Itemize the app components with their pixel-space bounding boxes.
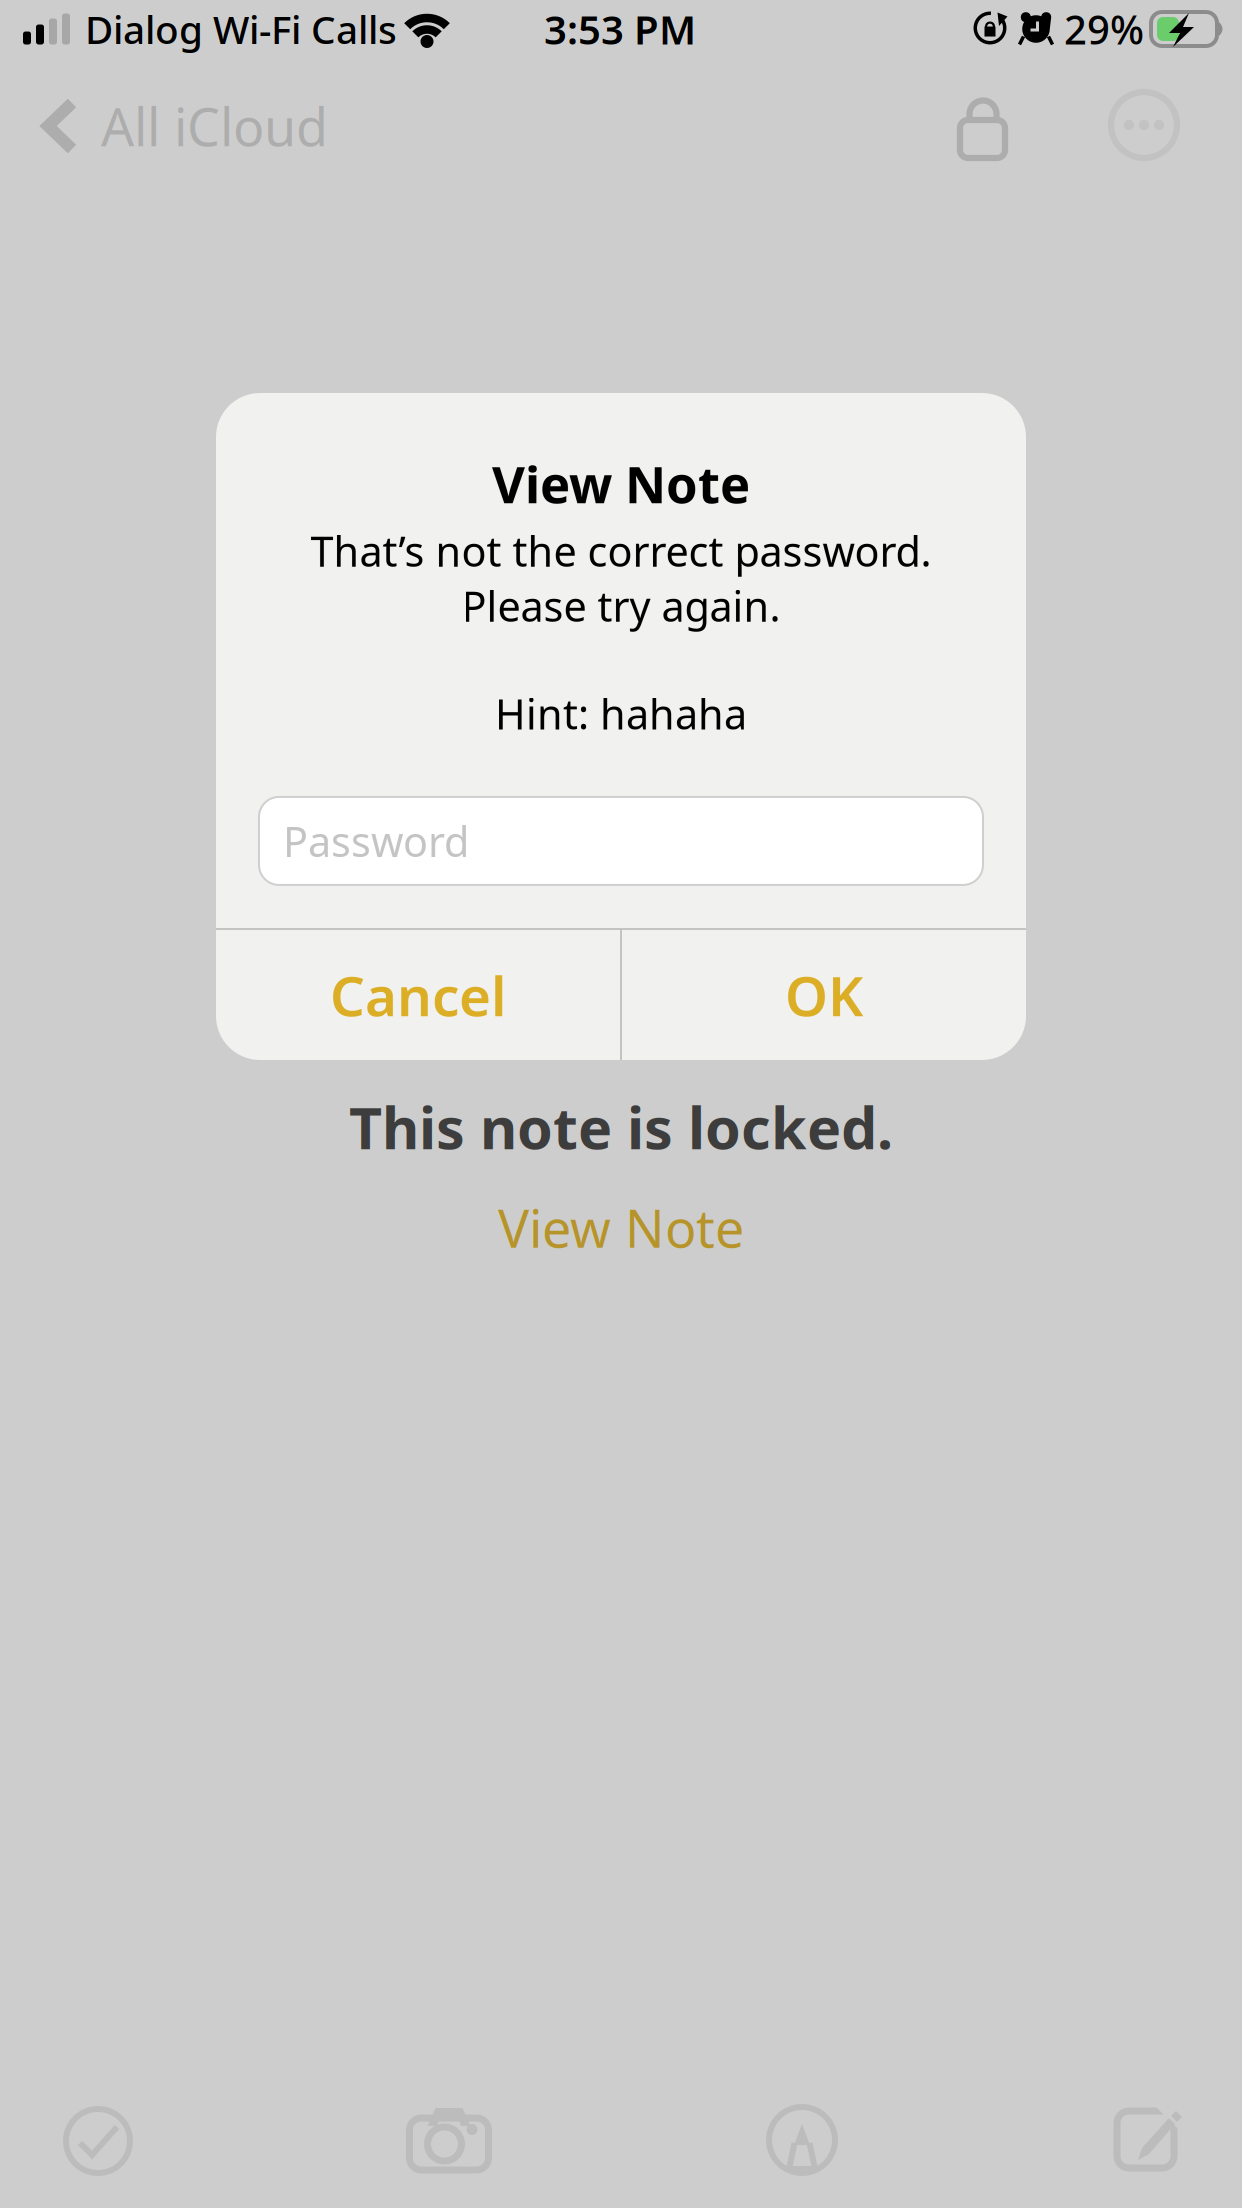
staticText: 3:53 PM bbox=[544, 2, 696, 55]
staticText: View Note bbox=[492, 450, 750, 517]
staticText: Password bbox=[283, 813, 469, 868]
staticText: 29% bbox=[1064, 2, 1144, 55]
staticText: Cancel bbox=[330, 959, 506, 1031]
staticText: All iCloud bbox=[101, 91, 328, 161]
button[interactable]: Checklist bbox=[3, 2086, 193, 2196]
staticText: This note is locked. bbox=[349, 1089, 893, 1165]
button[interactable]: View Note bbox=[454, 1165, 788, 1276]
button[interactable]: OK bbox=[622, 930, 1026, 1060]
button[interactable]: More bbox=[1092, 77, 1196, 173]
staticText: That’s not the correct password. bbox=[310, 523, 931, 578]
staticText: Please try again. bbox=[461, 578, 780, 633]
button[interactable]: All iCloud bbox=[7, 78, 407, 174]
staticText: Dialog Wi-Fi Calls bbox=[85, 3, 397, 55]
staticText: OK bbox=[785, 959, 863, 1031]
button[interactable]: Markup bbox=[707, 2085, 897, 2195]
button[interactable]: Camera bbox=[354, 2083, 544, 2193]
button[interactable]: Lock bbox=[928, 78, 1038, 174]
button[interactable]: Cancel bbox=[216, 930, 620, 1060]
staticText: Hint: hahaha bbox=[495, 686, 747, 741]
button[interactable]: Compose bbox=[1055, 2082, 1242, 2192]
staticText: View Note bbox=[498, 1193, 744, 1262]
